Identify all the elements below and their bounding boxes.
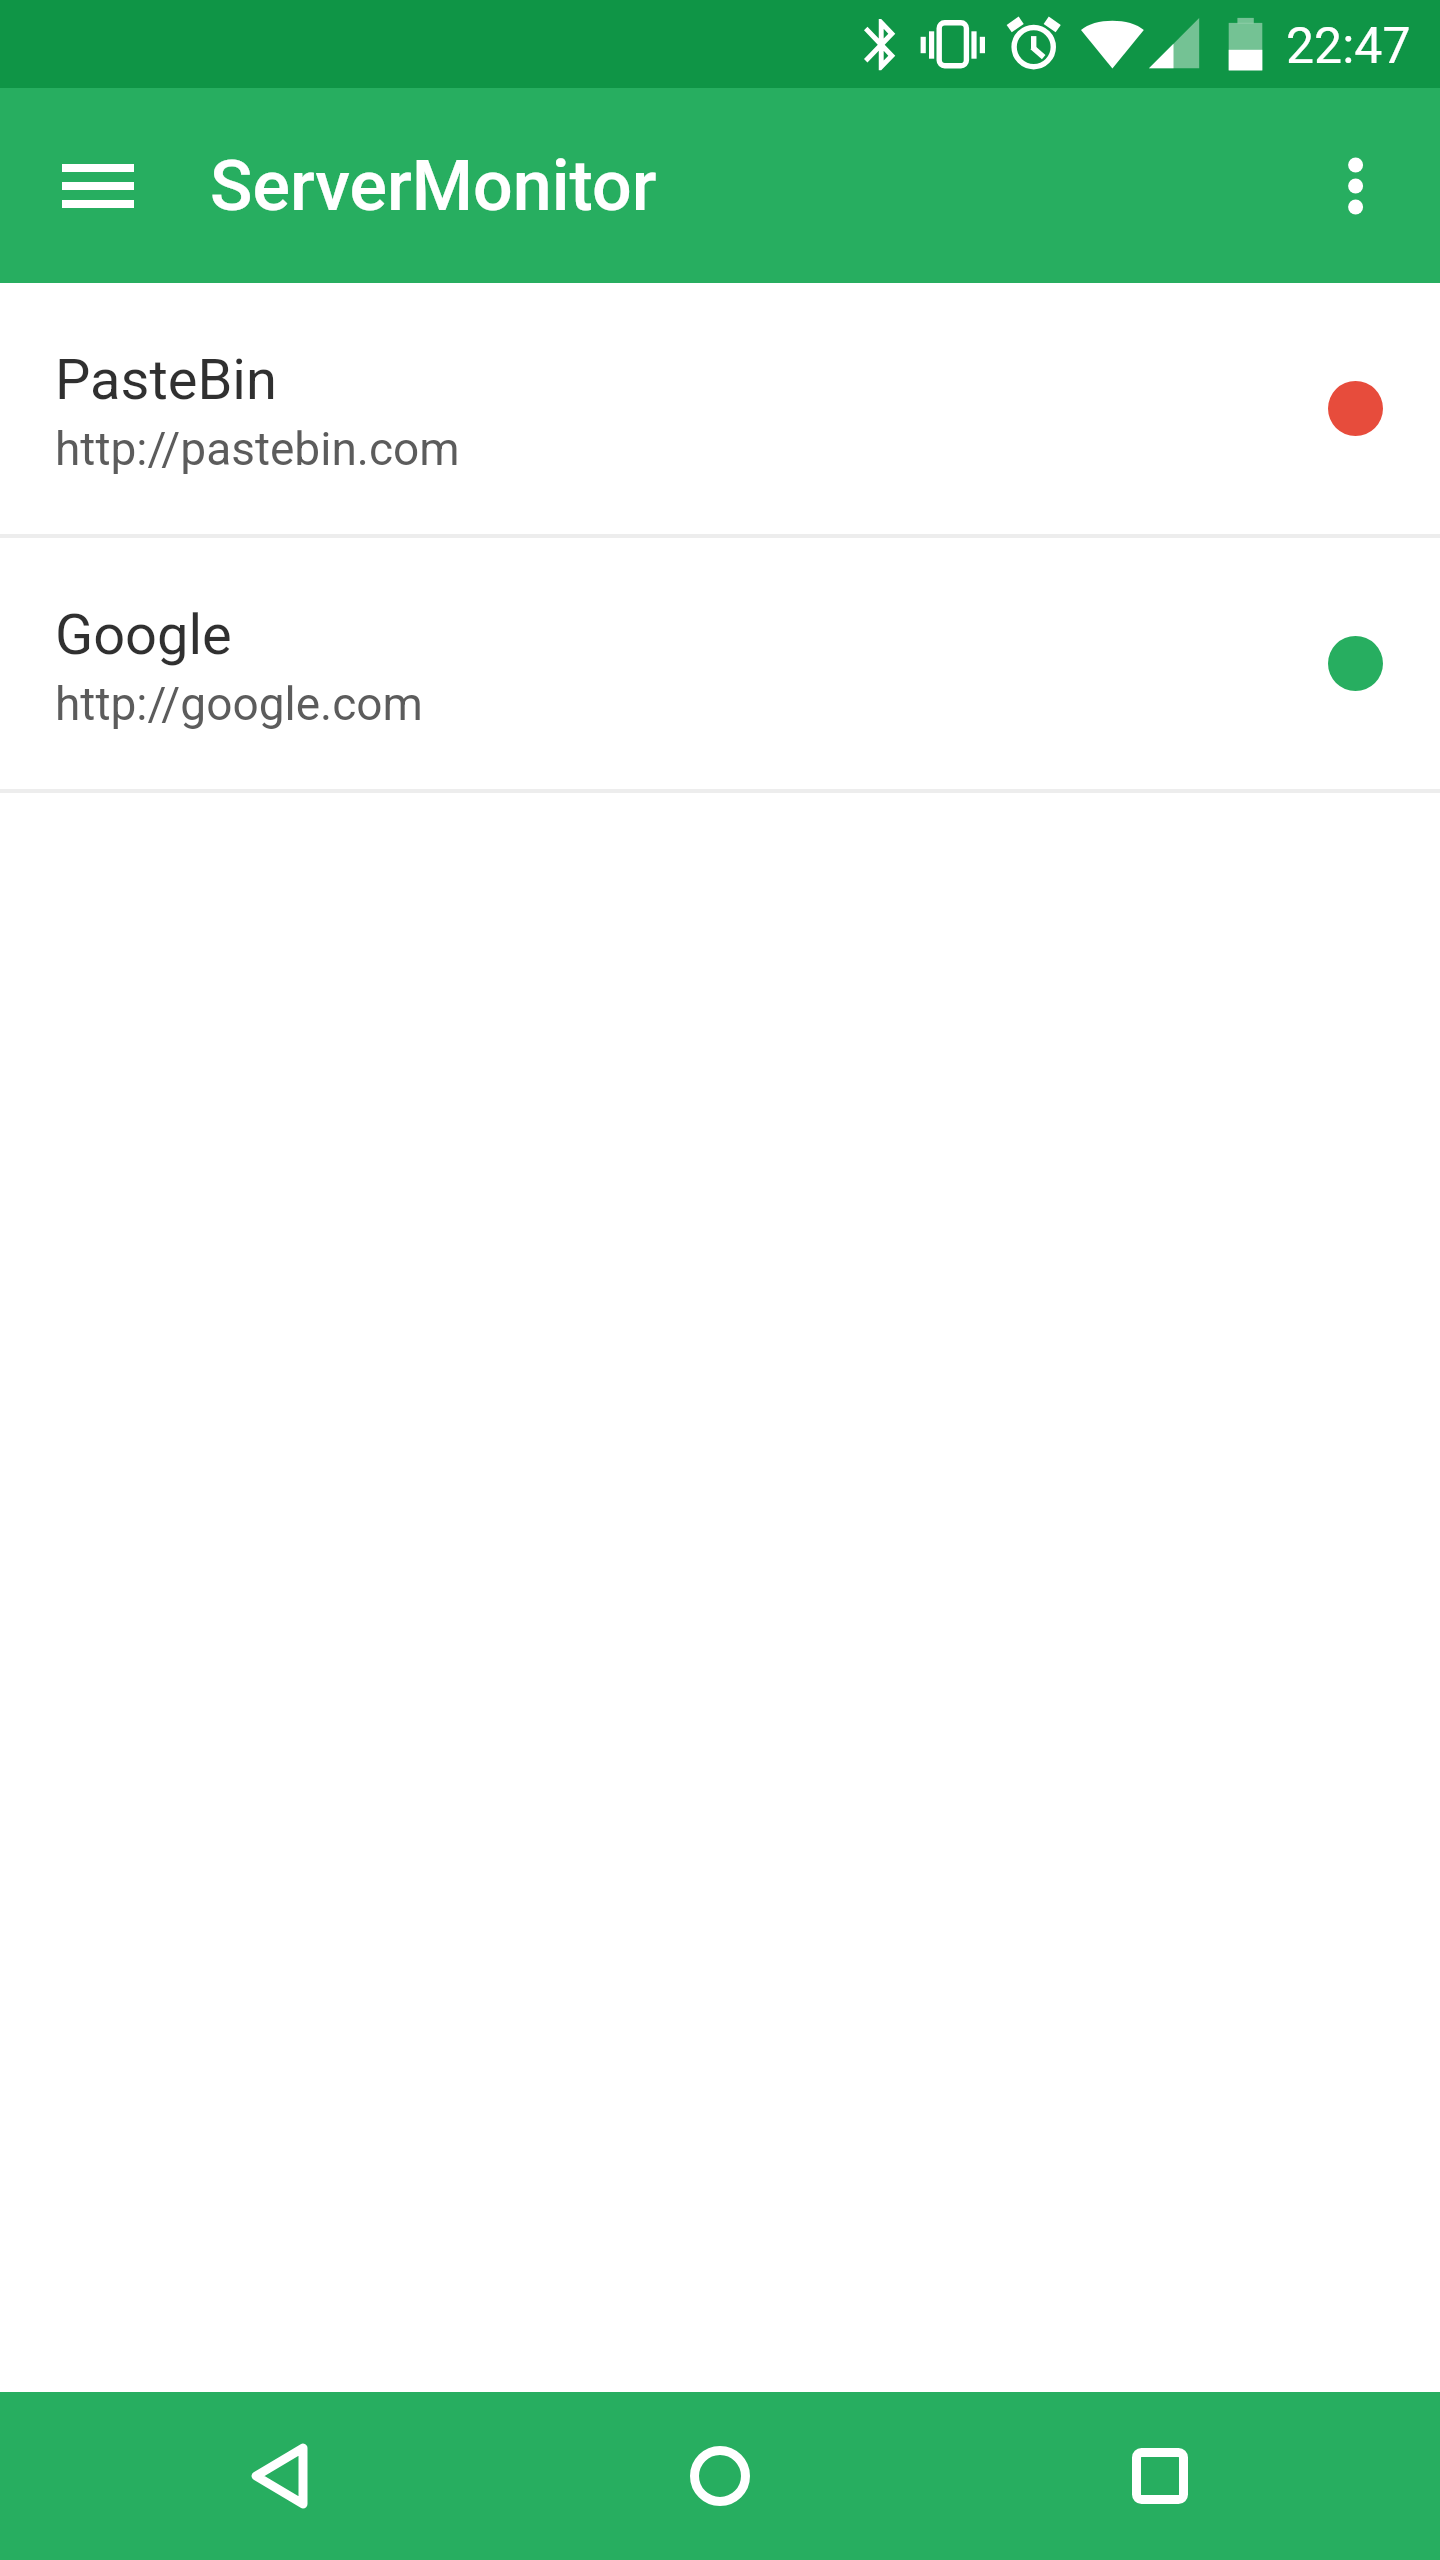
button[interactable]: Recent apps (960, 2392, 1440, 2560)
staticText: 22:47 (1286, 17, 1411, 76)
staticText: ServerMonitor (210, 145, 657, 227)
staticText: http://google.com (55, 677, 423, 731)
staticText: http://pastebin.com (55, 422, 460, 476)
button[interactable]: PasteBin (0, 283, 1440, 534)
button[interactable]: Open navigation drawer (40, 163, 156, 209)
button[interactable]: Google (0, 538, 1440, 789)
button[interactable]: Back (0, 2392, 480, 2560)
button[interactable]: Home (480, 2392, 960, 2560)
staticText: PasteBin (55, 347, 277, 413)
button[interactable]: More options (1310, 163, 1402, 209)
staticText: Google (55, 602, 232, 668)
